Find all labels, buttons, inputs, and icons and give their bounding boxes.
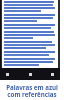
button[interactable] — [2, 0, 58, 68]
button[interactable]: Palavras em azul com referências Strong — [0, 83, 64, 100]
staticText: Palavras em azul com referências Strong — [3, 83, 61, 100]
